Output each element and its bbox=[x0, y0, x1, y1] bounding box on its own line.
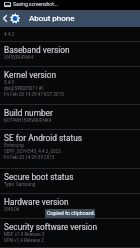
button[interactable]: 4.4.2 bbox=[0, 27, 140, 42]
staticText: SEPF_SCH-I545_4.4.2_0022 bbox=[4, 149, 61, 154]
staticText: Copied to clipboard. bbox=[47, 210, 95, 216]
staticText: Fri Feb 20 14:29:47 KST 2015 bbox=[4, 92, 64, 97]
staticText: 4.4.2 bbox=[4, 32, 15, 37]
staticText: 3.4.0 bbox=[4, 80, 15, 85]
button[interactable]: Navigate up bbox=[0, 10, 9, 27]
staticText: I545VRUFNK4 bbox=[4, 55, 34, 60]
staticText: About phone bbox=[29, 14, 75, 23]
staticText: Type: Samsung bbox=[4, 182, 36, 187]
staticText: MDF v1.0 Release 3 bbox=[4, 232, 45, 237]
button[interactable]: Kernel version bbox=[0, 67, 140, 105]
staticText: KOT49H.I545VRUFNK4 bbox=[4, 118, 52, 123]
staticText: Build number bbox=[4, 108, 53, 118]
button[interactable]: Secure boot status bbox=[0, 169, 140, 194]
staticText: I545.06 bbox=[4, 207, 20, 212]
button[interactable]: Hardware version bbox=[0, 194, 140, 219]
staticText: SE for Android status bbox=[4, 133, 83, 143]
staticText: dpi@SWDD5011 #1 bbox=[4, 86, 45, 91]
staticText: Fri Feb 20 14:29:39 2015 bbox=[4, 155, 55, 160]
button[interactable]: Build number bbox=[0, 105, 140, 130]
button[interactable]: Security software version bbox=[0, 219, 140, 248]
button[interactable]: SE for Android status bbox=[0, 130, 140, 169]
staticText: Enforcing bbox=[4, 143, 24, 148]
staticText: Hardware version bbox=[4, 197, 69, 207]
staticText: Kernel version bbox=[4, 70, 57, 80]
staticText: Baseband version bbox=[4, 45, 70, 55]
button[interactable]: Baseband version bbox=[0, 42, 140, 67]
staticText: Saving screenshot... bbox=[13, 1, 58, 7]
staticText: Secure boot status bbox=[4, 172, 74, 182]
staticText: Security software version bbox=[4, 222, 98, 232]
staticText: VPN v1.4 Release 2 bbox=[4, 238, 44, 243]
